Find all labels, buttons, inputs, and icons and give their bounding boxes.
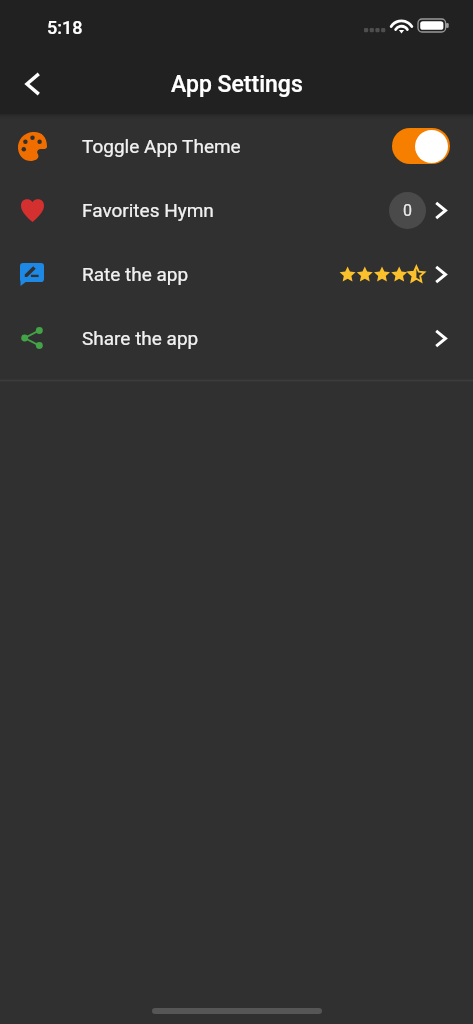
button[interactable]: Back bbox=[8, 60, 56, 108]
button[interactable]: Share the app bbox=[0, 306, 473, 370]
button[interactable]: Toggle app theme switch bbox=[392, 128, 450, 164]
staticText: App Settings bbox=[171, 71, 303, 98]
staticText: Favorites Hymn bbox=[82, 199, 214, 221]
staticText: 0 bbox=[403, 201, 412, 220]
button[interactable]: Rate the app bbox=[0, 242, 473, 306]
staticText: Toggle App Theme bbox=[82, 135, 241, 157]
button[interactable]: Toggle App Theme bbox=[0, 114, 473, 178]
staticText: 5:18 bbox=[47, 17, 83, 38]
button[interactable]: Favorites Hymn bbox=[0, 178, 473, 242]
staticText: Rate the app bbox=[82, 263, 189, 285]
staticText: Share the app bbox=[82, 327, 199, 349]
